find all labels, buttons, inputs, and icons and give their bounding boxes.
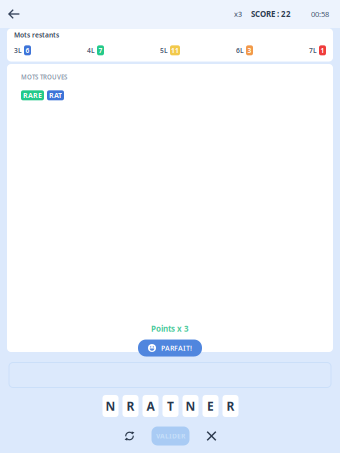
button[interactable]: RAT xyxy=(47,90,64,100)
button[interactable]: Clear letters xyxy=(198,426,224,445)
staticText: 6 xyxy=(25,46,29,55)
staticText: 7L xyxy=(309,46,317,55)
button[interactable]: A xyxy=(142,395,158,417)
staticText: Mots restants xyxy=(14,30,59,39)
staticText: RAT xyxy=(49,90,62,100)
staticText: 00:58 xyxy=(311,9,329,19)
button[interactable]: N xyxy=(182,395,198,417)
staticText: T xyxy=(167,398,174,414)
staticText: 5L xyxy=(160,46,168,55)
staticText: 4L xyxy=(87,46,95,55)
staticText: VALIDER xyxy=(156,432,185,440)
button[interactable]: VALIDER xyxy=(151,426,189,445)
staticText: 1 xyxy=(320,46,324,55)
staticText: N xyxy=(105,398,115,414)
staticText: R xyxy=(226,398,234,414)
button[interactable]: T xyxy=(162,395,178,417)
button[interactable]: N xyxy=(102,395,118,417)
button[interactable]: Back xyxy=(0,0,28,28)
button[interactable]: PARFAIT! xyxy=(138,339,202,356)
button[interactable]: RARE xyxy=(21,90,44,100)
staticText: MOTS TROUVÉS xyxy=(21,73,67,81)
staticText: N xyxy=(185,398,195,414)
staticText: SCORE : 22 xyxy=(251,9,291,19)
staticText: A xyxy=(146,398,154,414)
staticText: 3 xyxy=(247,46,251,55)
staticText: R xyxy=(126,398,134,414)
staticText: 7 xyxy=(98,46,102,55)
staticText: PARFAIT! xyxy=(161,343,192,353)
button[interactable]: E xyxy=(202,395,218,417)
button[interactable]: Shuffle letters xyxy=(116,426,142,445)
button[interactable]: R xyxy=(122,395,138,417)
staticText: Points x 3 xyxy=(151,323,189,334)
staticText: RARE xyxy=(23,90,42,100)
staticText: x3 xyxy=(234,9,242,19)
staticText: E xyxy=(207,398,214,414)
staticText: 11 xyxy=(171,46,179,55)
staticText: 3L xyxy=(14,46,22,55)
button[interactable]: R xyxy=(222,395,238,417)
staticText: 6L xyxy=(236,46,244,55)
